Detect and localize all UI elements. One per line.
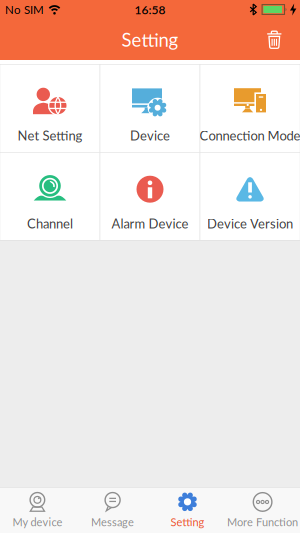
button[interactable]: Device Version	[200, 153, 300, 240]
staticText: Channel	[27, 216, 73, 231]
button[interactable]: Connection Mode	[200, 65, 300, 152]
button[interactable]: Channel	[0, 153, 100, 240]
button[interactable]: Setting	[150, 488, 225, 533]
staticText: Net Setting	[17, 128, 82, 143]
staticText: Setting	[170, 515, 204, 529]
button[interactable]: My device	[0, 488, 75, 533]
staticText: Device Version	[207, 216, 293, 231]
staticText: More Function	[227, 515, 298, 529]
staticText: Connection Mode	[199, 128, 300, 143]
button[interactable]: More Function	[225, 488, 300, 533]
button[interactable]: Device	[100, 65, 200, 152]
staticText: 16:58	[134, 2, 165, 17]
staticText: Message	[91, 515, 134, 529]
button[interactable]: Message	[75, 488, 150, 533]
button[interactable]: Net Setting	[0, 65, 100, 152]
staticText: Alarm Device	[111, 216, 188, 231]
button[interactable]: Alarm Device	[100, 153, 200, 240]
staticText: My device	[12, 515, 62, 529]
staticText: Setting	[121, 28, 178, 51]
staticText: Device	[130, 128, 170, 143]
staticText: No SIM	[5, 3, 44, 16]
button[interactable]: Delete	[265, 29, 300, 50]
